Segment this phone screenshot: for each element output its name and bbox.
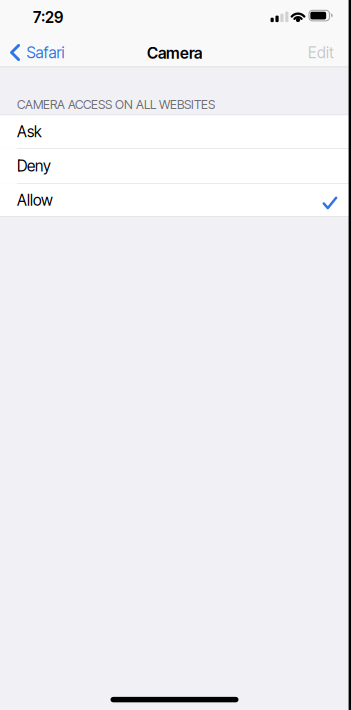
staticText: Ask <box>17 122 42 141</box>
button[interactable]: Deny <box>0 149 351 183</box>
staticText: Allow <box>17 191 53 209</box>
button[interactable]: Ask <box>0 115 351 148</box>
staticText: CAMERA ACCESS ON ALL WEBSITES <box>17 97 215 112</box>
staticText: Camera <box>147 43 202 62</box>
staticText: 7:29 <box>33 8 63 27</box>
staticText: Deny <box>17 156 51 175</box>
staticText: Safari <box>26 43 64 62</box>
staticText: Edit <box>308 43 334 62</box>
button[interactable]: Allow <box>0 184 351 216</box>
button[interactable]: Edit <box>300 37 351 67</box>
button[interactable]: Back <box>0 37 72 67</box>
